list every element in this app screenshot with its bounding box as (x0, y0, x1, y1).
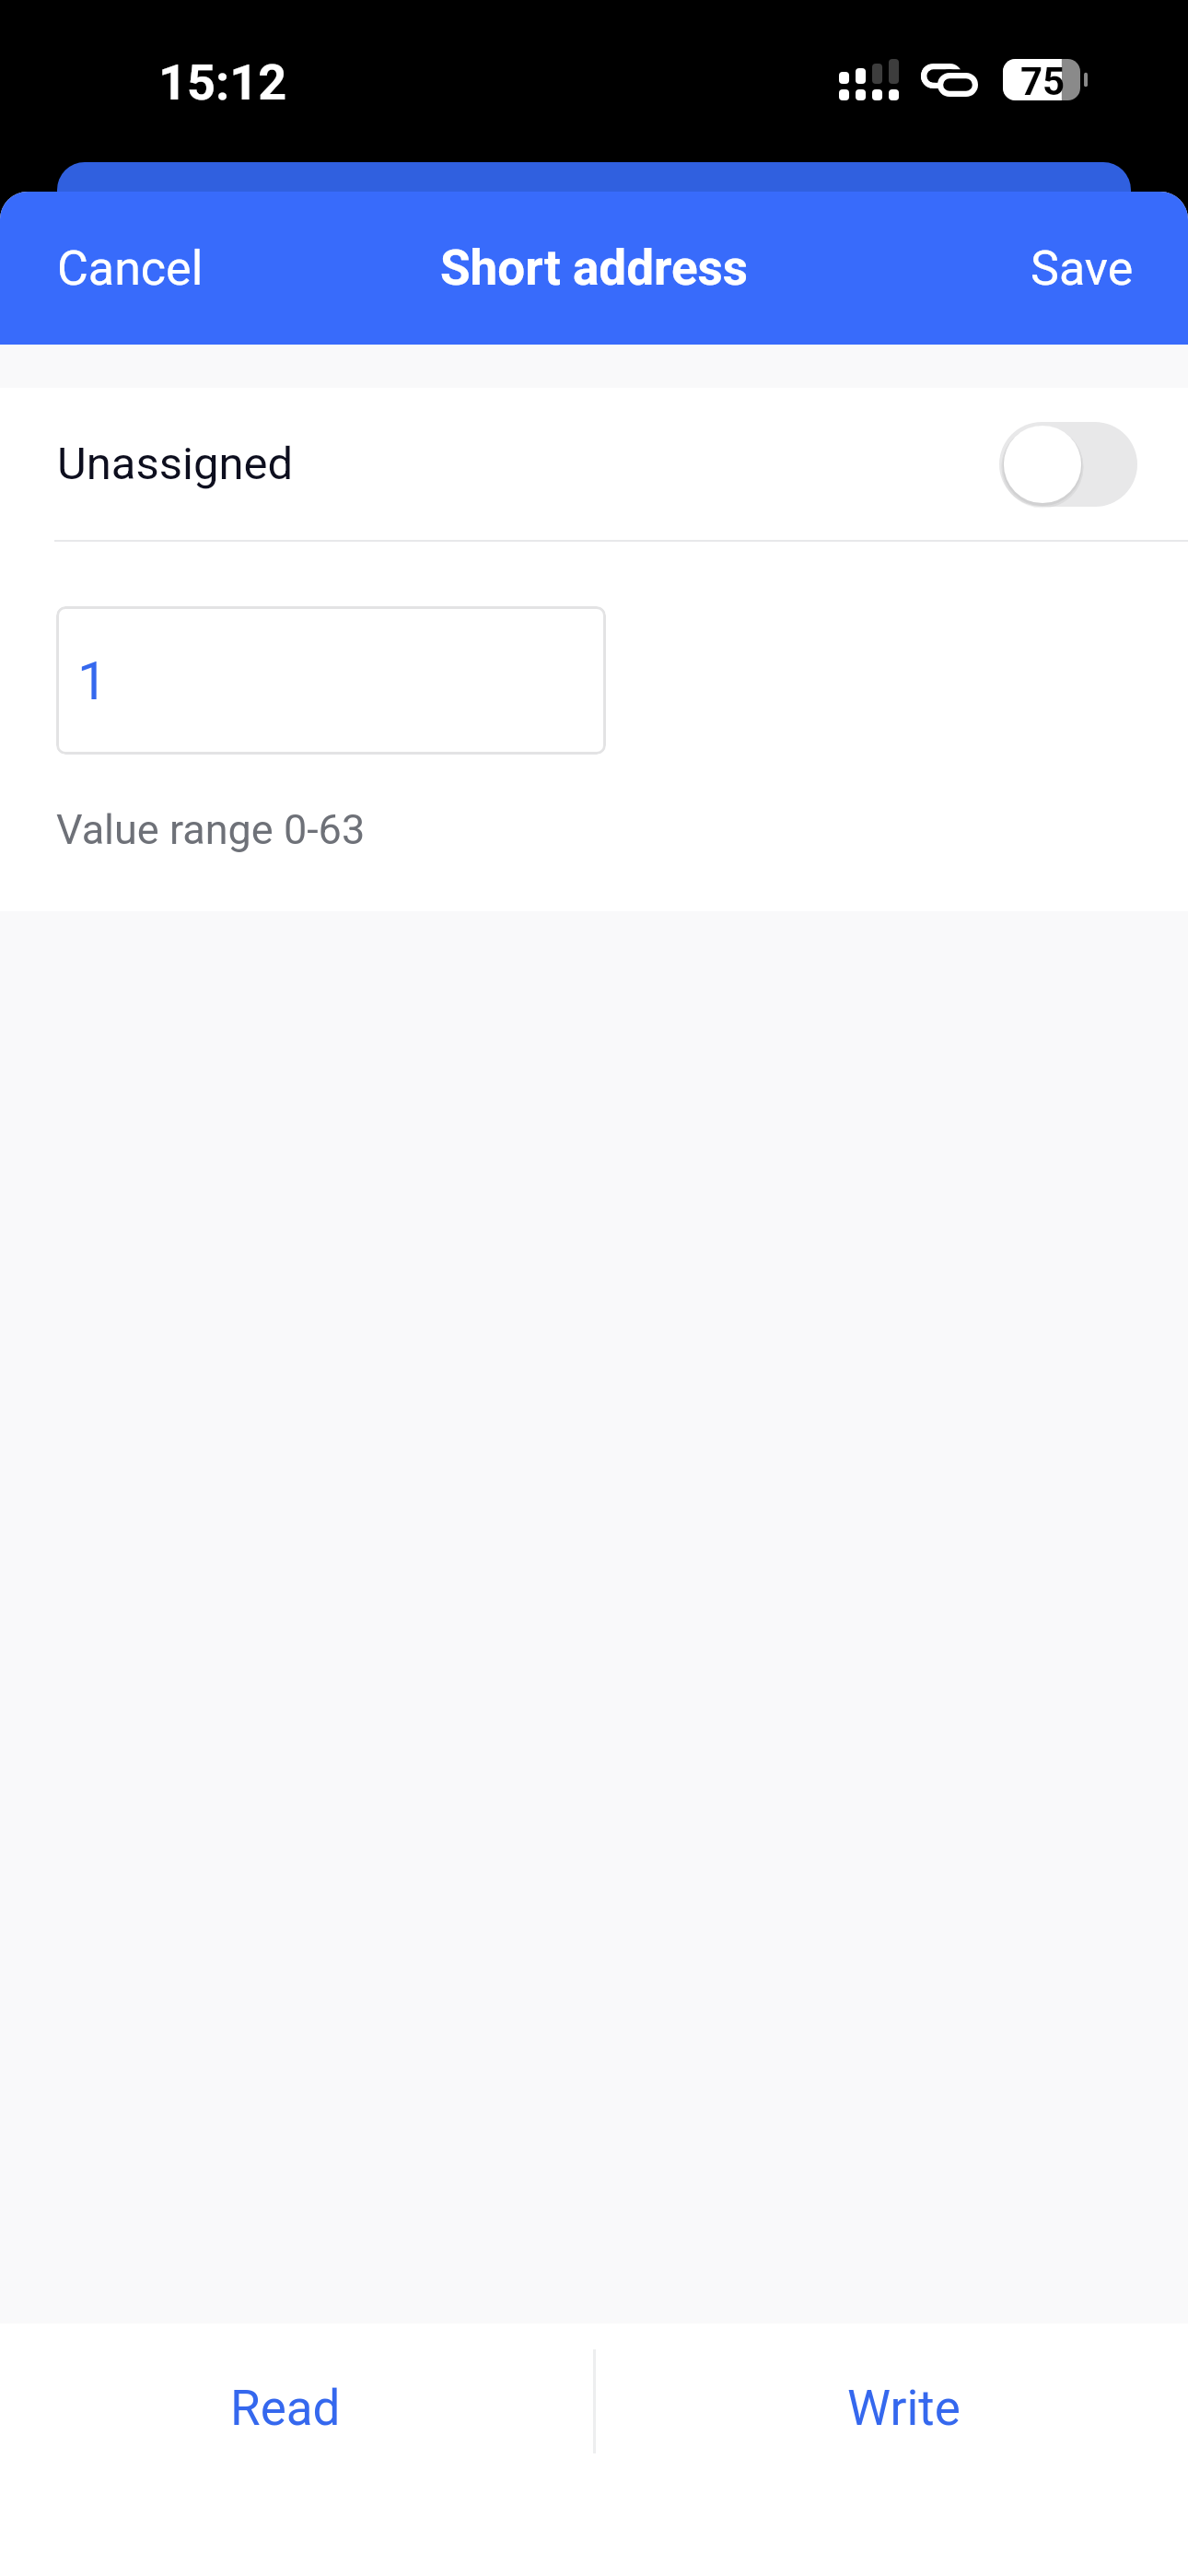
button[interactable]: Cancel (0, 192, 240, 345)
staticText: Save (1031, 240, 1134, 297)
button[interactable]: Unassigned toggle, off (999, 422, 1137, 507)
staticText: Write (847, 2380, 961, 2437)
staticText: Unassigned (57, 438, 294, 490)
staticText: 75 (1020, 59, 1066, 100)
staticText: 15:12 (158, 53, 287, 111)
button[interactable]: Save (994, 192, 1188, 345)
button[interactable]: Write (594, 2324, 1188, 2493)
button[interactable]: 1 (56, 606, 606, 755)
staticText: Read (230, 2380, 341, 2437)
button[interactable]: Read (0, 2324, 594, 2493)
staticText: Cancel (57, 240, 204, 297)
staticText: 1 (77, 650, 108, 712)
button[interactable]: Unassigned (0, 388, 1188, 540)
staticText: Short address (0, 240, 1188, 297)
staticText: Value range 0-63 (56, 805, 366, 854)
